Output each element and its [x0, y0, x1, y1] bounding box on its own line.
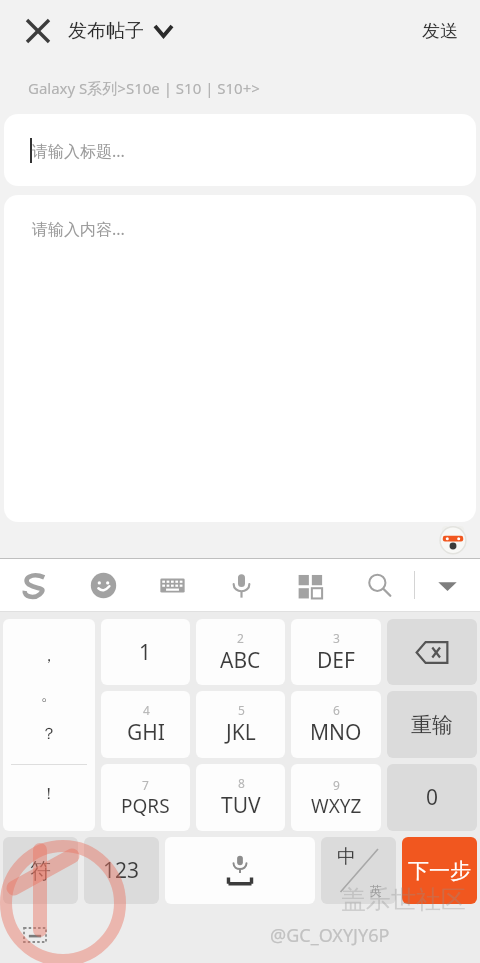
staticText: 8 [238, 775, 245, 791]
button[interactable]: 请输入内容... [4, 195, 476, 522]
button[interactable]: More tools [276, 559, 345, 611]
button[interactable]: 9 [291, 764, 381, 831]
staticText: PQRS [121, 793, 170, 819]
staticText: 盖乐世社区 [341, 884, 466, 915]
staticText: 3 [333, 630, 340, 646]
button[interactable]: 发送 [400, 10, 480, 53]
staticText: DEF [317, 646, 355, 675]
button[interactable]: Galaxy S系列>S10e | S10 | S10+> [0, 62, 480, 114]
staticText: 5 [238, 702, 245, 718]
staticText: 9 [333, 777, 340, 793]
button[interactable]: 0 [387, 764, 477, 831]
staticText: TUV [221, 791, 261, 820]
button[interactable]: Search [345, 559, 414, 611]
staticText: 请输入内容... [32, 218, 125, 240]
button[interactable]: 123 [84, 837, 159, 904]
staticText: ， [41, 646, 57, 666]
staticText: JKL [226, 718, 256, 747]
button[interactable]: 发布帖子 [66, 11, 174, 51]
staticText: 0 [426, 783, 439, 812]
staticText: WXYZ [311, 793, 362, 819]
button[interactable]: Emoji [69, 559, 138, 611]
button[interactable]: 符 [3, 837, 78, 904]
staticText: 发送 [422, 20, 458, 43]
staticText: GHI [127, 718, 165, 747]
staticText: 6 [333, 702, 340, 718]
button[interactable]: 下一步 [402, 837, 477, 904]
staticText: ABC [220, 646, 261, 675]
button[interactable]: 6 [291, 691, 381, 758]
staticText: 发布帖子 [68, 19, 144, 43]
staticText: @GC_OXYJY6P [270, 923, 390, 948]
button[interactable]: 中 [321, 837, 396, 904]
staticText: 请输入标题... [32, 140, 125, 162]
button[interactable]: Space [165, 837, 315, 904]
button[interactable]: 3 [291, 619, 381, 685]
staticText: 123 [103, 856, 140, 885]
staticText: 下一步 [408, 858, 471, 884]
staticText: 4 [143, 702, 150, 718]
button[interactable]: 4 [101, 691, 190, 758]
button[interactable]: Close [16, 9, 60, 53]
staticText: MNO [310, 718, 362, 747]
button[interactable]: 8 [196, 764, 285, 831]
button[interactable]: 5 [196, 691, 285, 758]
button[interactable]: 1 [101, 619, 190, 685]
staticText: ！ [41, 784, 57, 804]
button[interactable]: 请输入标题... [4, 114, 476, 186]
staticText: 中 [337, 845, 356, 869]
button[interactable]: Voice input [207, 559, 276, 611]
button[interactable]: ， [3, 619, 95, 831]
staticText: Galaxy S系列>S10e | S10 | S10+> [28, 78, 260, 98]
staticText: 符 [30, 858, 51, 884]
staticText: 1 [139, 638, 152, 667]
staticText: 重输 [411, 712, 453, 738]
button[interactable]: Sogou input [0, 559, 69, 611]
button[interactable]: 2 [196, 619, 285, 685]
button[interactable]: Avatar [438, 525, 468, 555]
staticText: 。 [41, 685, 57, 705]
button[interactable]: Delete [387, 619, 477, 685]
staticText: 2 [237, 630, 244, 646]
staticText: ？ [41, 724, 57, 744]
staticText: 英 [370, 883, 382, 898]
button[interactable]: Hide keyboard [415, 559, 480, 611]
button[interactable]: Switch keyboard [20, 920, 50, 950]
staticText: 7 [142, 777, 149, 793]
button[interactable]: Keyboard layout [138, 559, 207, 611]
button[interactable]: 重输 [387, 691, 477, 758]
button[interactable]: 7 [101, 764, 190, 831]
